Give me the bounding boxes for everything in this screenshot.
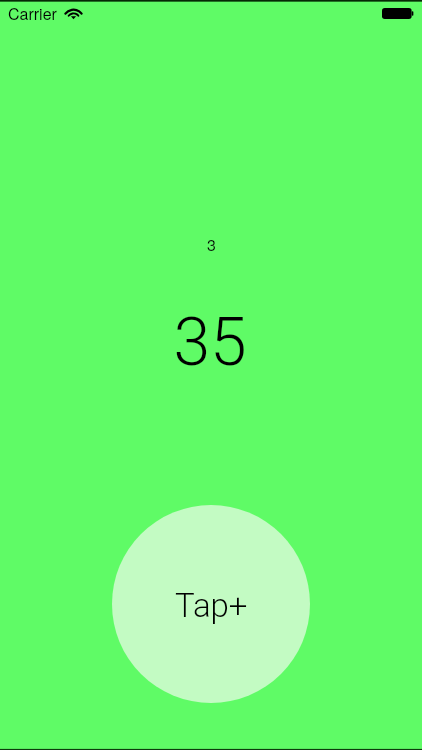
other: Battery full (382, 8, 414, 19)
staticText: Carrier (8, 2, 57, 25)
staticText: 3 (207, 233, 216, 256)
button[interactable]: Tap+ (112, 505, 310, 703)
staticText: Tap+ (175, 586, 248, 625)
other: Wi-Fi signal (65, 7, 82, 19)
staticText: 35 (173, 304, 247, 381)
